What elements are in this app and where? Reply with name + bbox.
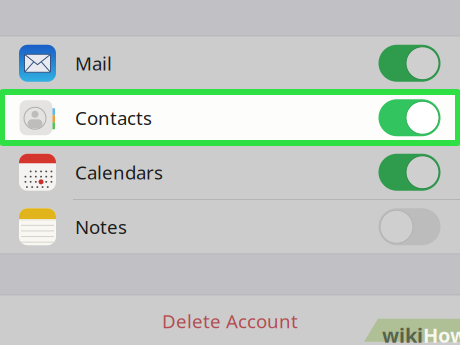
staticText: Mail xyxy=(75,51,112,76)
button[interactable]: Contacts xyxy=(0,91,460,144)
staticText: Contacts xyxy=(75,105,152,130)
staticText: Notes xyxy=(75,214,127,239)
staticText: Calendars xyxy=(75,160,163,185)
staticText: Delete Account xyxy=(162,309,298,333)
button[interactable]: Mail xyxy=(0,36,460,90)
button[interactable]: Delete Account xyxy=(0,295,460,345)
button[interactable]: Notes xyxy=(0,200,460,253)
staticText: How xyxy=(423,322,460,345)
button[interactable]: Calendars xyxy=(0,145,460,199)
staticText: wiki xyxy=(382,322,423,345)
